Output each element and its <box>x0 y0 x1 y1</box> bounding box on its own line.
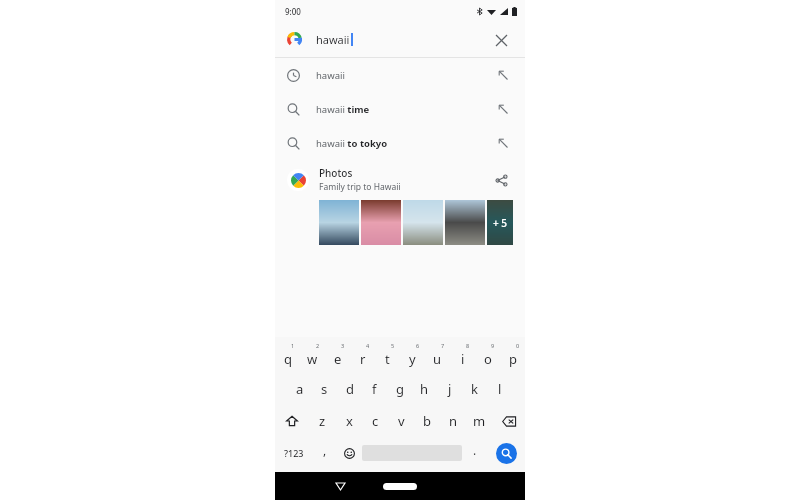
staticText: o <box>484 350 492 368</box>
button[interactable] <box>319 200 359 245</box>
button[interactable]: k <box>462 373 487 405</box>
button[interactable]: 4 <box>350 341 375 373</box>
staticText: hawaii time <box>316 103 370 116</box>
button[interactable]: Back <box>327 473 353 499</box>
staticText: 4 <box>366 342 370 349</box>
button[interactable]: a <box>287 373 312 405</box>
button[interactable]: 7 <box>425 341 450 373</box>
button[interactable]: Backspace <box>492 405 525 437</box>
staticText: e <box>334 350 342 368</box>
staticText: v <box>398 412 405 430</box>
button[interactable]: b <box>414 405 440 437</box>
staticText: , <box>323 442 327 458</box>
staticText: 9:00 <box>285 6 301 17</box>
button[interactable]: Home <box>383 483 417 490</box>
staticText: hawaii <box>316 69 345 82</box>
button[interactable] <box>403 200 443 245</box>
staticText: x <box>346 412 353 430</box>
button[interactable]: hawaii time <box>275 92 525 126</box>
staticText: hawaii <box>316 32 350 47</box>
button[interactable]: 1 <box>275 341 300 373</box>
button[interactable]: Insert <box>493 65 513 85</box>
button[interactable]: hawaii <box>275 58 525 92</box>
button[interactable]: j <box>437 373 462 405</box>
staticText: hawaii to tokyo <box>316 137 388 150</box>
staticText: k <box>471 380 478 398</box>
staticText: l <box>498 380 502 398</box>
button[interactable]: 6 <box>400 341 425 373</box>
staticText: a <box>296 380 304 398</box>
staticText: b <box>423 412 431 430</box>
staticText: j <box>448 380 452 398</box>
staticText: i <box>461 350 465 368</box>
staticText: r <box>360 350 366 368</box>
staticText: 2 <box>316 342 320 349</box>
staticText: 1 <box>291 342 295 349</box>
staticText: q <box>284 350 292 368</box>
staticText: w <box>307 350 318 368</box>
staticText: h <box>420 380 429 398</box>
button[interactable]: , <box>312 437 337 469</box>
staticText: + 5 <box>493 216 508 230</box>
button[interactable] <box>361 200 401 245</box>
staticText: g <box>396 380 404 398</box>
staticText: y <box>409 350 416 368</box>
button[interactable]: 5 <box>375 341 400 373</box>
button[interactable]: 8 <box>450 341 475 373</box>
staticText: m <box>473 412 486 430</box>
button[interactable]: ?123 <box>275 437 312 469</box>
staticText: t <box>385 350 390 368</box>
button[interactable]: n <box>440 405 466 437</box>
button[interactable]: x <box>336 405 362 437</box>
staticText: Family trip to Hawaii <box>319 181 401 193</box>
button[interactable]: m <box>466 405 492 437</box>
button[interactable]: + 5 <box>487 200 513 245</box>
button[interactable]: v <box>388 405 414 437</box>
staticText: p <box>509 350 517 368</box>
staticText: 7 <box>441 342 445 349</box>
staticText: z <box>319 412 326 430</box>
staticText: n <box>449 412 458 430</box>
button[interactable]: . <box>462 437 487 469</box>
button[interactable]: hawaii to tokyo <box>275 126 525 160</box>
button[interactable]: Search <box>496 443 517 464</box>
staticText: s <box>321 380 328 398</box>
button[interactable]: Photos <box>275 160 525 245</box>
button[interactable]: Emoji <box>337 437 362 469</box>
button[interactable]: d <box>337 373 362 405</box>
button[interactable]: 9 <box>475 341 500 373</box>
button[interactable]: 3 <box>325 341 350 373</box>
staticText: u <box>433 350 442 368</box>
button[interactable]: c <box>362 405 388 437</box>
staticText: f <box>372 380 377 398</box>
staticText: c <box>372 412 379 430</box>
button[interactable]: z <box>309 405 336 437</box>
staticText: 3 <box>341 342 345 349</box>
button[interactable]: l <box>487 373 512 405</box>
staticText: 6 <box>416 342 420 349</box>
staticText: ?123 <box>284 447 304 459</box>
button[interactable]: Shift <box>275 405 309 437</box>
button[interactable]: Insert <box>493 133 513 153</box>
button[interactable]: 0 <box>500 341 525 373</box>
button[interactable]: Clear <box>489 28 513 52</box>
button[interactable]: 2 <box>300 341 325 373</box>
button[interactable] <box>445 200 485 245</box>
button[interactable]: g <box>387 373 412 405</box>
staticText: d <box>346 380 354 398</box>
staticText: 9 <box>491 342 495 349</box>
button[interactable]: s <box>312 373 337 405</box>
button[interactable]: Share <box>489 168 513 192</box>
button[interactable]: h <box>412 373 437 405</box>
staticText: 8 <box>466 342 470 349</box>
button[interactable]: Insert <box>493 99 513 119</box>
button[interactable]: f <box>362 373 387 405</box>
staticText: . <box>473 442 477 458</box>
staticText: 5 <box>391 342 395 349</box>
staticText: Photos <box>319 166 353 180</box>
staticText: 0 <box>516 342 520 349</box>
